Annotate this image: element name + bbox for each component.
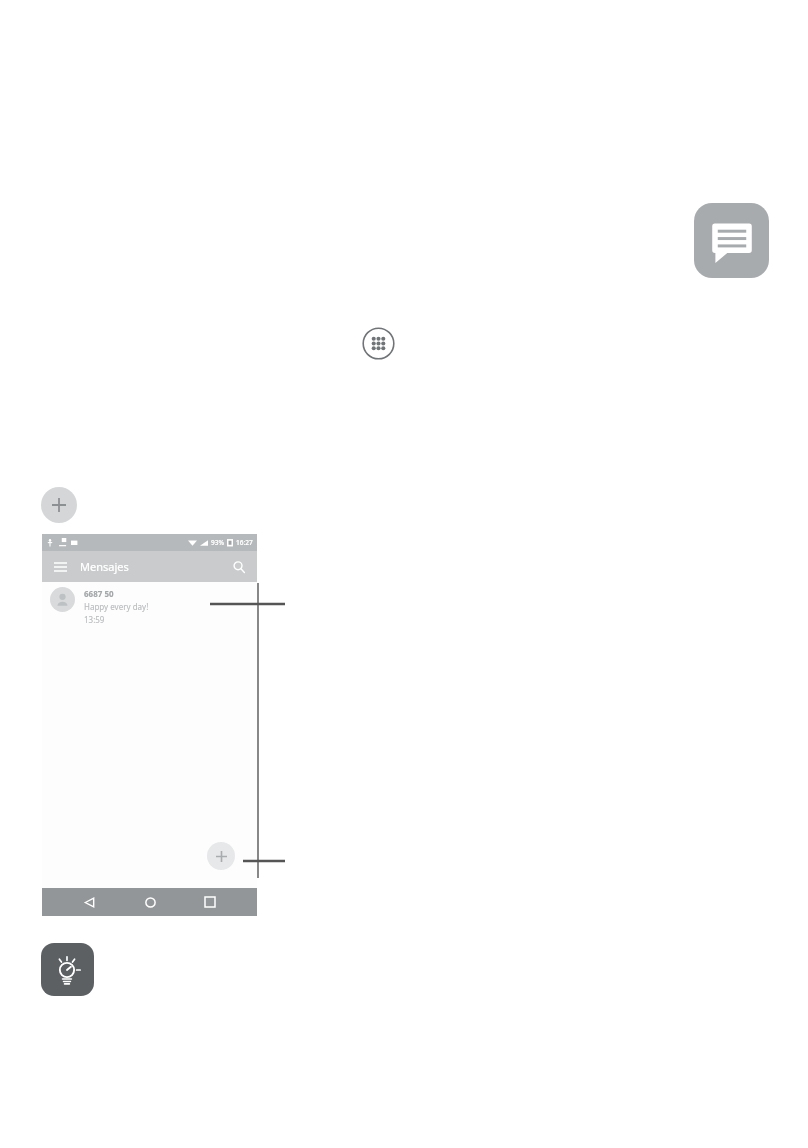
button[interactable]: Recents bbox=[196, 888, 224, 916]
button[interactable]: Search bbox=[230, 558, 248, 576]
staticText: 16:27 bbox=[236, 538, 253, 547]
button[interactable]: Menu bbox=[51, 558, 69, 576]
staticText: 93% bbox=[211, 538, 224, 547]
staticText: 6687 50 bbox=[84, 588, 114, 599]
staticText: Mensajes bbox=[80, 559, 129, 574]
button[interactable]: 6687 50 bbox=[42, 582, 257, 630]
button[interactable]: Tip bbox=[41, 943, 94, 996]
button[interactable]: All apps bbox=[362, 327, 395, 360]
staticText: 13:59 bbox=[84, 614, 105, 625]
button[interactable]: New message bbox=[207, 842, 235, 870]
staticText: Happy every day! bbox=[84, 601, 149, 612]
button[interactable]: Add bbox=[41, 487, 77, 523]
button[interactable]: Home bbox=[136, 888, 164, 916]
button[interactable]: Back bbox=[75, 888, 103, 916]
button[interactable]: Messaging app bbox=[694, 203, 769, 278]
